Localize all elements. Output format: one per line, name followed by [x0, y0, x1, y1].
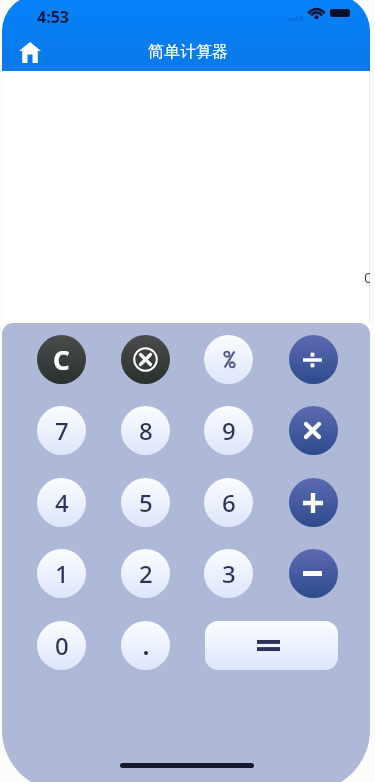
button[interactable]: Minus	[289, 549, 338, 598]
staticText: 3	[222, 557, 236, 590]
staticText: 6	[222, 486, 236, 519]
button[interactable]: 6	[204, 478, 253, 527]
button[interactable]: 4	[37, 478, 86, 527]
button[interactable]: 3	[204, 549, 253, 598]
button[interactable]: Equals	[205, 621, 338, 670]
button[interactable]: Multiply	[289, 406, 338, 455]
staticText: 2	[139, 557, 153, 590]
button[interactable]: Home	[19, 41, 41, 63]
button[interactable]: Plus	[289, 478, 338, 527]
staticText: 4:53	[37, 6, 69, 28]
staticText: 0	[55, 629, 69, 662]
button[interactable]: 2	[121, 549, 170, 598]
staticText: 1	[55, 557, 69, 590]
button[interactable]: Percent	[204, 335, 253, 384]
button[interactable]: Clear	[37, 335, 86, 384]
staticText: 9	[222, 414, 236, 447]
button[interactable]: 8	[121, 406, 170, 455]
button[interactable]: Backspace	[121, 335, 170, 384]
button[interactable]: 7	[37, 406, 86, 455]
staticText: 8	[139, 414, 153, 447]
button[interactable]: 1	[37, 549, 86, 598]
button[interactable]: 0	[37, 621, 86, 670]
staticText: 5	[139, 486, 153, 519]
staticText: C	[53, 342, 70, 377]
staticText: 4	[55, 486, 69, 519]
button[interactable]: 5	[121, 478, 170, 527]
button[interactable]: 9	[204, 406, 253, 455]
staticText: 0	[364, 267, 370, 287]
staticText: 7	[55, 414, 69, 447]
button[interactable]: Decimal point	[121, 621, 170, 670]
button[interactable]: Divide	[289, 335, 338, 384]
staticText: 简单计算器	[148, 42, 228, 62]
